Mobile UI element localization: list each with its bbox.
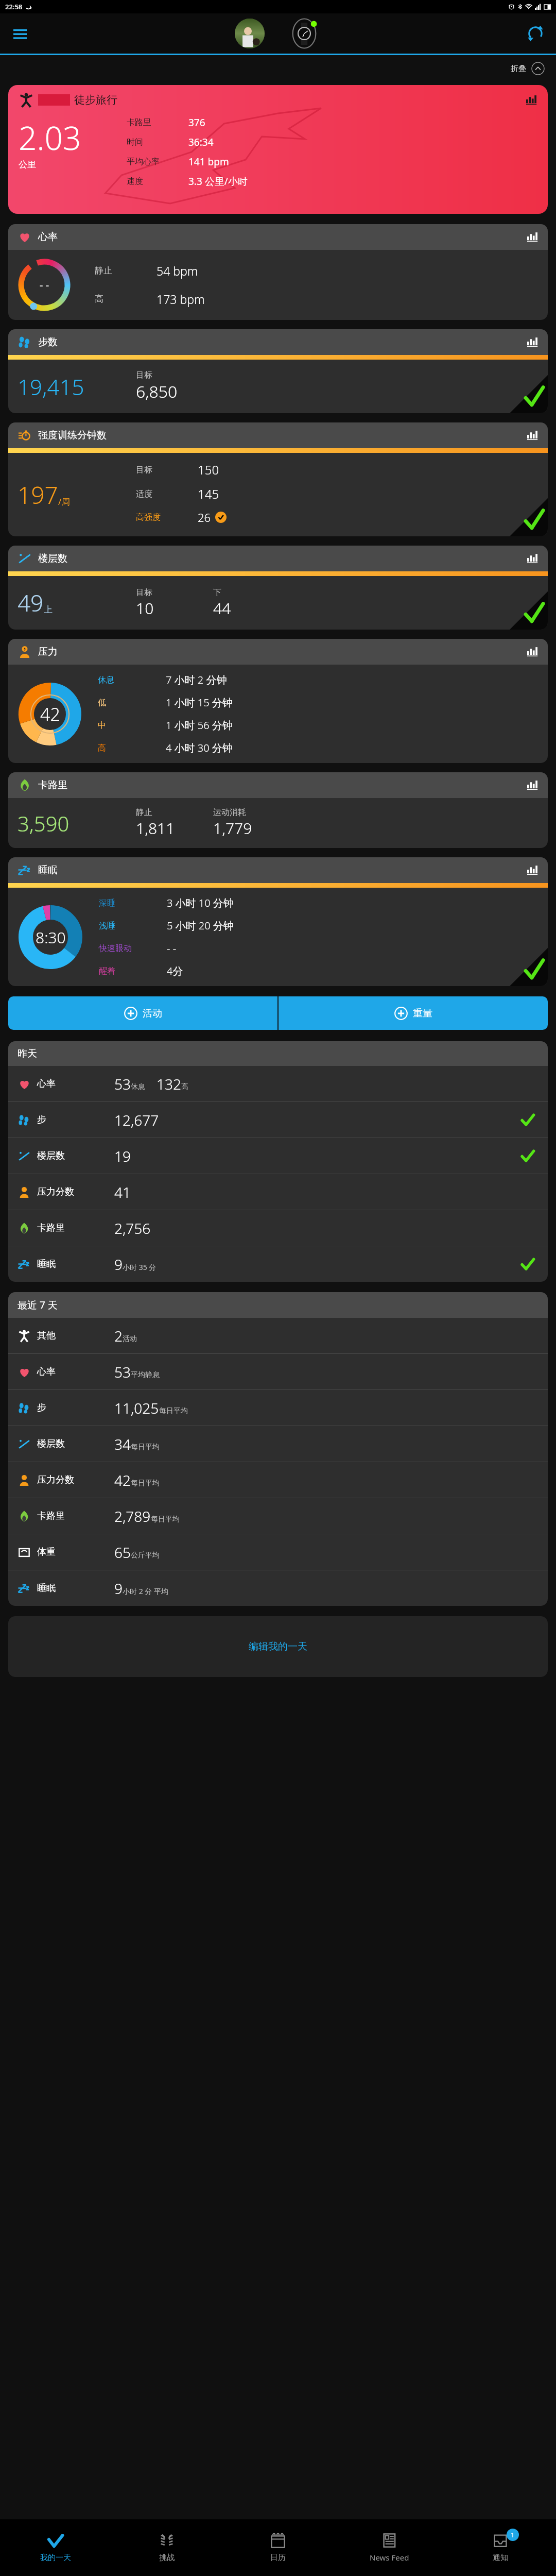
staticText: 楼层数 (37, 1438, 114, 1450)
button[interactable]: 日历 (222, 2519, 334, 2576)
staticText: 1,811 (136, 818, 175, 839)
button[interactable]: Sync (523, 21, 548, 46)
button[interactable]: 体重 (18, 1534, 538, 1570)
staticText: 132 (157, 1074, 181, 1094)
staticText: - - (167, 941, 177, 955)
staticText: 小时 2 分 平均 (123, 1586, 168, 1596)
button[interactable]: 睡眠 (18, 1570, 538, 1606)
button[interactable]: 1 (445, 2519, 556, 2576)
button[interactable]: Chart (527, 553, 538, 564)
staticText: 我的一天 (40, 2553, 71, 2563)
staticText: 深睡 (99, 898, 167, 908)
button[interactable]: 编辑我的一天 (8, 1616, 548, 1677)
button[interactable]: Chart (527, 779, 538, 791)
button[interactable]: News Feed (334, 2519, 445, 2576)
staticText: 4分 (167, 964, 183, 978)
button[interactable]: 挑战 (111, 2519, 222, 2576)
button[interactable]: Watch device (288, 18, 320, 49)
staticText: 活动 (143, 1007, 162, 1020)
button[interactable]: 压力 (8, 639, 548, 763)
staticText: 卡路里 (38, 779, 67, 791)
staticText: 小时 35 分 (123, 1262, 157, 1272)
button[interactable]: Chart (527, 865, 538, 876)
staticText: 睡眠 (37, 1258, 114, 1270)
button[interactable]: 心率 (18, 1354, 538, 1389)
staticText: 每日平均 (131, 1443, 160, 1452)
button[interactable]: 睡眠 (18, 1246, 538, 1282)
staticText: 6,850 (136, 380, 178, 403)
button[interactable]: 重量 (279, 996, 548, 1030)
staticText: 编辑我的一天 (249, 1640, 307, 1653)
button[interactable]: 步 (18, 1390, 538, 1426)
staticText: 54 bpm (157, 263, 198, 279)
staticText: 150 (198, 461, 219, 478)
staticText: 公斤平均 (131, 1551, 160, 1560)
staticText: /周 (58, 496, 71, 507)
button[interactable]: 卡路里 (18, 1498, 538, 1534)
button[interactable]: Workout chart (526, 94, 537, 106)
button[interactable]: 活动 (8, 996, 277, 1030)
button[interactable]: 睡眠 (8, 857, 548, 986)
staticText: 高强度 (136, 512, 198, 522)
button[interactable]: 卡路里 (18, 778, 538, 792)
staticText: 145 (198, 485, 219, 502)
staticText: 65 (114, 1543, 131, 1562)
staticText: 3,590 (18, 809, 136, 837)
button[interactable]: Chart (527, 231, 538, 243)
button[interactable]: 心率 (8, 224, 548, 320)
button[interactable]: 心率 (18, 230, 538, 244)
button[interactable]: Chart (527, 430, 538, 441)
button[interactable]: 折叠 (511, 62, 545, 75)
button[interactable]: 楼层数 (18, 1426, 538, 1462)
staticText: 高 (98, 743, 166, 753)
staticText: 步 (37, 1114, 114, 1126)
button[interactable]: 压力分数 (18, 1462, 538, 1498)
staticText: 心率 (37, 1366, 114, 1378)
button[interactable]: Chart (527, 336, 538, 348)
staticText: 2,756 (114, 1218, 151, 1238)
button[interactable]: 楼层数 (18, 1138, 538, 1174)
button[interactable]: 强度训练分钟数 (18, 428, 538, 443)
staticText: 卡路里 (37, 1510, 114, 1522)
staticText: 42 (40, 702, 60, 726)
staticText: 每日平均 (131, 1479, 160, 1488)
staticText: 醒着 (99, 966, 167, 976)
button[interactable]: Profile (235, 19, 265, 48)
staticText: 197 (18, 479, 58, 511)
button[interactable]: Chart (527, 646, 538, 657)
button[interactable]: 睡眠 (18, 863, 538, 877)
button[interactable]: 压力 (18, 645, 538, 659)
button[interactable]: 我的一天 (0, 2519, 111, 2576)
staticText: 每日平均 (151, 1515, 180, 1524)
button[interactable]: 卡路里 (8, 772, 548, 848)
button[interactable]: 强度训练分钟数 (8, 422, 548, 536)
button[interactable]: 徒步旅行 (8, 85, 548, 214)
staticText: 折叠 (511, 64, 526, 74)
button[interactable]: 其他 (18, 1318, 538, 1353)
button[interactable]: 步数 (18, 335, 538, 349)
staticText: 上 (44, 604, 53, 615)
staticText: 压力分数 (37, 1186, 114, 1198)
staticText: 26 (198, 510, 211, 525)
staticText: 步 (37, 1402, 114, 1414)
staticText: 42 (114, 1470, 131, 1490)
staticText: 公里 (19, 159, 36, 170)
button[interactable]: 心率 (18, 1066, 538, 1101)
button[interactable]: 步数 (8, 329, 548, 413)
button[interactable]: 卡路里 (18, 1210, 538, 1246)
button[interactable]: 楼层数 (18, 551, 538, 566)
button[interactable]: 步 (18, 1102, 538, 1138)
staticText: 其他 (37, 1330, 114, 1342)
staticText: 休息 (131, 1082, 145, 1092)
staticText: 时间 (127, 137, 188, 147)
button[interactable]: 楼层数 (8, 546, 548, 630)
button[interactable]: Menu (8, 22, 32, 45)
staticText: 中 (98, 720, 166, 731)
button[interactable]: 压力分数 (18, 1174, 538, 1210)
staticText: 目标 (136, 587, 152, 598)
staticText: 平均心率 (127, 157, 188, 167)
staticText: 11,025 (114, 1398, 159, 1418)
staticText: 高 (95, 294, 157, 304)
staticText: 每日平均 (159, 1406, 188, 1416)
staticText: 最近 7 天 (18, 1298, 58, 1312)
